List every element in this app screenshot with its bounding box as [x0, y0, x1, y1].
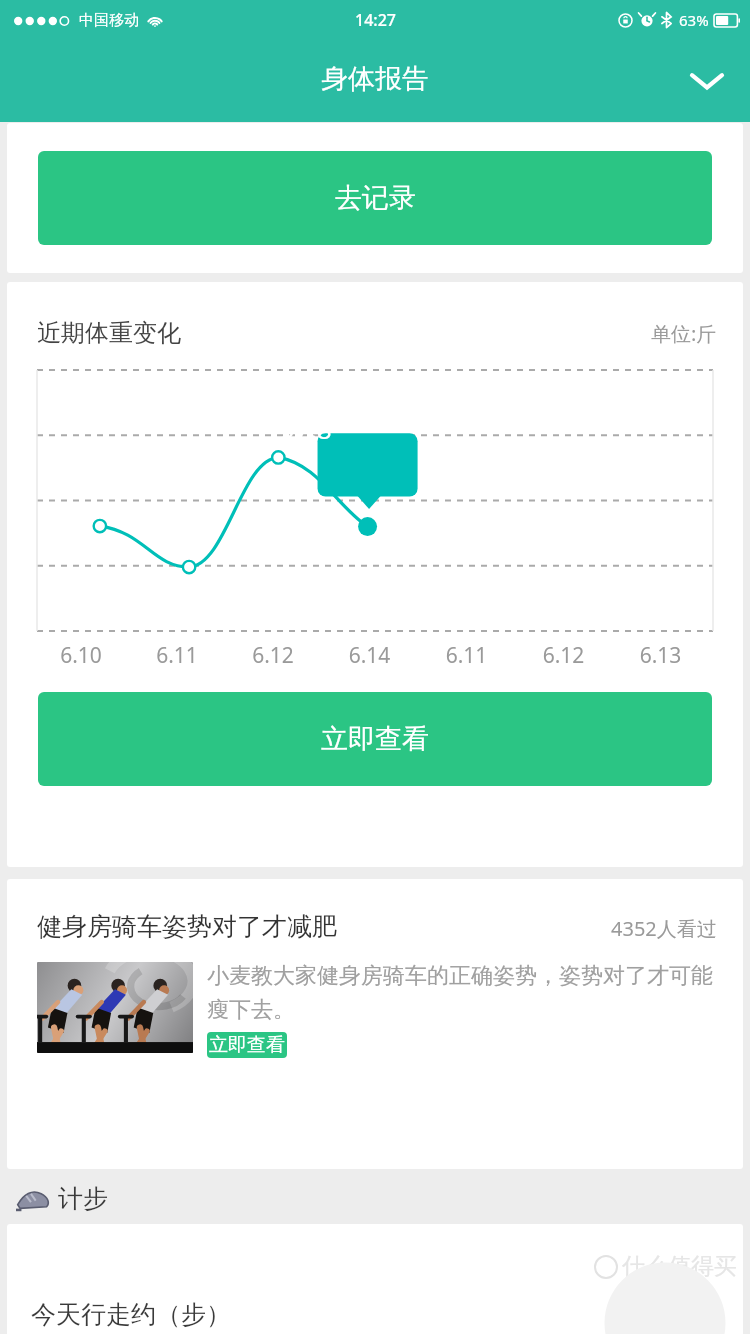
staticText: 什么值得买 [622, 1252, 737, 1281]
staticText: 6.12 [515, 641, 612, 670]
staticText: 健身房骑车姿势对了才减肥 [37, 911, 337, 942]
staticText: 14:27 [355, 9, 396, 31]
button[interactable]: 去记录 [38, 151, 712, 245]
staticText: 97.8 [280, 411, 332, 446]
staticText: 中国移动 [79, 11, 139, 30]
button[interactable]: Collapse [678, 52, 736, 110]
staticText: 6.10 [33, 641, 129, 670]
staticText: 6.13 [612, 641, 709, 670]
staticText: 6.12 [225, 641, 321, 670]
staticText: 立即查看 [321, 722, 429, 756]
button[interactable]: 立即查看 [207, 1032, 287, 1058]
staticText: 今天行走约（步） [31, 1299, 231, 1330]
staticText: 6.11 [418, 641, 515, 670]
staticText: 计步 [58, 1183, 108, 1214]
staticText: 小麦教大家健身房骑车的正确姿势，姿势对了才可能瘦下去。 [207, 962, 717, 1024]
staticText: 单位:斤 [651, 320, 717, 347]
staticText: 4352人看过 [611, 915, 717, 942]
button[interactable]: 立即查看 [38, 692, 712, 786]
staticText: 身体报告 [321, 62, 429, 96]
staticText: 63% [679, 10, 709, 30]
staticText: 6.14 [321, 641, 418, 670]
staticText: 去记录 [335, 181, 416, 215]
staticText: 立即查看 [209, 1033, 285, 1057]
staticText: 6.11 [129, 641, 225, 670]
staticText: 近期体重变化 [37, 318, 181, 348]
